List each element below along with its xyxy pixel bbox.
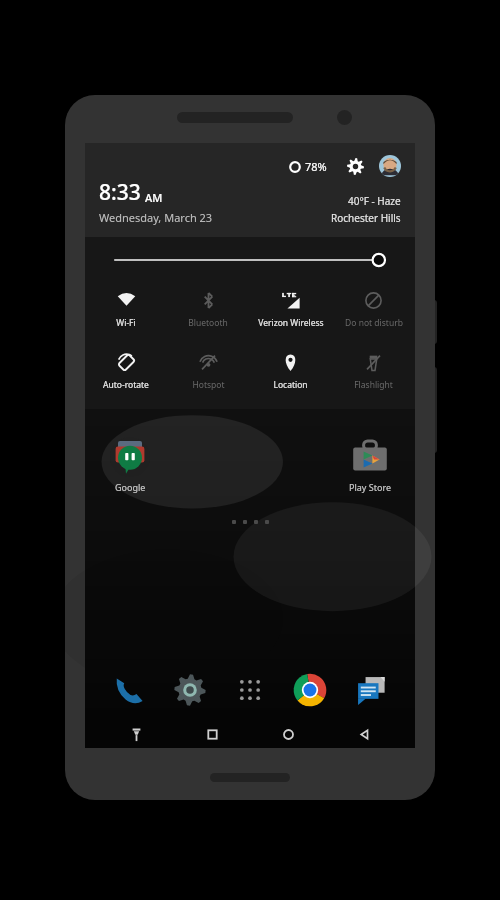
staticText: 40°F - Haze (348, 194, 401, 208)
button[interactable]: Chrome (288, 668, 332, 712)
button[interactable]: Home (263, 720, 313, 748)
staticText: Google (115, 481, 146, 493)
staticText: Wednesday, March 23 (99, 210, 213, 225)
button[interactable]: Play Store (339, 435, 401, 495)
button[interactable]: 8:33 (99, 178, 331, 225)
button[interactable]: Back (339, 720, 389, 748)
staticText: Location (273, 379, 308, 391)
button[interactable]: Phone (107, 668, 151, 712)
button[interactable]: Brightness (85, 237, 415, 283)
staticText: Do not disturb (345, 317, 403, 329)
button[interactable]: Hotspot (167, 345, 249, 399)
staticText: Bluetooth (188, 317, 228, 329)
button[interactable]: Bluetooth (167, 283, 249, 337)
staticText: 8:33 (99, 178, 141, 207)
button[interactable]: Do not disturb (332, 283, 415, 337)
staticText: Verizon Wireless (258, 317, 324, 329)
button[interactable]: Flashlight (111, 720, 161, 748)
staticText: Hotspot (192, 379, 225, 391)
button[interactable]: Wi-Fi (85, 283, 167, 337)
button[interactable]: Flashlight (332, 345, 415, 399)
staticText: 78% (305, 159, 327, 174)
staticText: AM (145, 190, 163, 205)
button[interactable]: Google (99, 435, 161, 495)
button[interactable]: Location (249, 345, 332, 399)
button[interactable]: Battery 78 percent (287, 157, 329, 176)
button[interactable]: User profile (379, 155, 401, 177)
button[interactable]: Settings (343, 154, 367, 178)
staticText: Flashlight (354, 379, 393, 391)
button[interactable]: 40°F - Haze (331, 194, 401, 225)
button[interactable]: Settings (168, 668, 212, 712)
button[interactable]: Recents (187, 720, 237, 748)
staticText: Play Store (349, 481, 391, 493)
button[interactable]: Messaging (349, 668, 393, 712)
button[interactable]: Verizon Wireless (249, 283, 332, 337)
staticText: Rochester Hills (331, 211, 401, 225)
staticText: Auto-rotate (103, 379, 149, 391)
staticText: Wi-Fi (116, 317, 136, 329)
button[interactable]: Auto-rotate (85, 345, 167, 399)
button[interactable]: Apps (228, 668, 272, 712)
